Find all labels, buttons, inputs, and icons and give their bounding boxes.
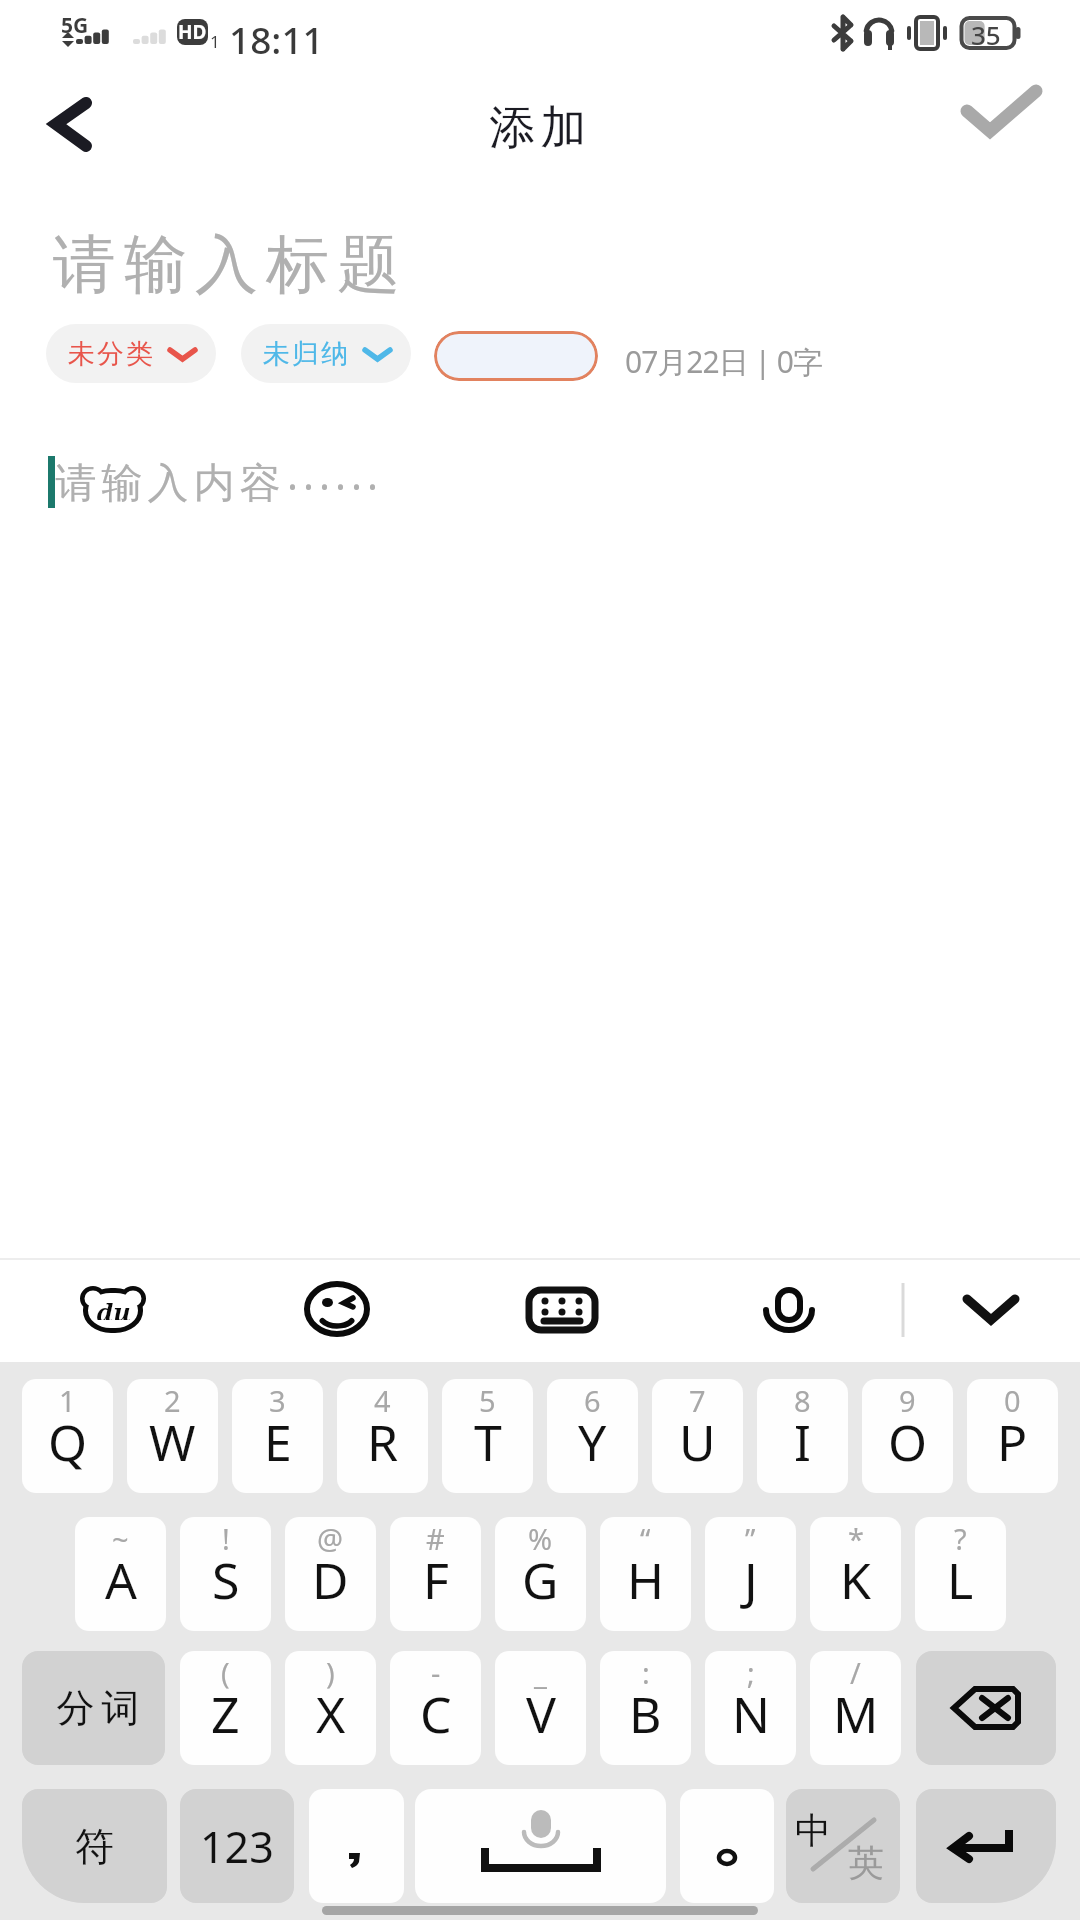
button[interactable]: Reminder bbox=[434, 331, 598, 381]
staticText: P bbox=[997, 1408, 1028, 1476]
staticText: 请输入标题 bbox=[49, 225, 404, 304]
button[interactable]: Enter bbox=[916, 1789, 1056, 1903]
button[interactable]: “ bbox=[600, 1517, 691, 1631]
button[interactable]: : bbox=[600, 1651, 691, 1765]
button[interactable]: ( bbox=[180, 1651, 271, 1765]
staticText: J bbox=[744, 1546, 758, 1614]
staticText: _ bbox=[534, 1653, 547, 1692]
button[interactable]: _ bbox=[495, 1651, 586, 1765]
staticText: % bbox=[528, 1519, 553, 1558]
staticText: H bbox=[627, 1546, 665, 1614]
staticText: D bbox=[312, 1546, 349, 1614]
button[interactable]: 6 bbox=[547, 1379, 638, 1493]
staticText: L bbox=[947, 1546, 974, 1614]
staticText: W bbox=[149, 1408, 196, 1476]
staticText: ······ bbox=[287, 458, 383, 514]
button[interactable]: 4 bbox=[337, 1379, 428, 1493]
staticText: 请输入内容 bbox=[53, 458, 283, 510]
button[interactable]: Hide keyboard bbox=[944, 1266, 1038, 1354]
button[interactable]: Done bbox=[950, 72, 1080, 188]
staticText: 4 bbox=[374, 1381, 391, 1420]
button[interactable]: 分词 bbox=[22, 1651, 165, 1765]
staticText: “ bbox=[640, 1519, 651, 1558]
button[interactable]: Backspace bbox=[916, 1651, 1056, 1765]
button[interactable]: ) bbox=[285, 1651, 376, 1765]
staticText: 符 bbox=[75, 1822, 114, 1871]
button[interactable]: Voice input bbox=[742, 1266, 836, 1354]
button[interactable]: Space bbox=[415, 1789, 666, 1903]
button[interactable]: Comma bbox=[309, 1789, 404, 1903]
staticText: V bbox=[526, 1680, 556, 1748]
staticText: ) bbox=[326, 1653, 335, 1692]
button[interactable]: Baidu input method bbox=[66, 1266, 160, 1354]
button[interactable]: Language toggle bbox=[786, 1789, 900, 1903]
staticText: # bbox=[426, 1519, 445, 1558]
staticText: Z bbox=[211, 1680, 240, 1748]
staticText: ” bbox=[745, 1519, 756, 1558]
button[interactable]: 未归纳 bbox=[241, 324, 411, 383]
staticText: 35 bbox=[971, 17, 1001, 52]
button[interactable]: 1 bbox=[22, 1379, 113, 1493]
staticText: G bbox=[522, 1546, 559, 1614]
staticText: 2 bbox=[164, 1381, 181, 1420]
button[interactable]: / bbox=[810, 1651, 901, 1765]
staticText: 8 bbox=[794, 1381, 811, 1420]
button[interactable]: 2 bbox=[127, 1379, 218, 1493]
staticText: X bbox=[316, 1680, 346, 1748]
staticText: ~ bbox=[112, 1519, 129, 1558]
staticText: M bbox=[833, 1680, 879, 1748]
staticText: A bbox=[105, 1546, 137, 1614]
button[interactable]: 符 bbox=[22, 1789, 167, 1903]
button[interactable]: * bbox=[810, 1517, 901, 1631]
staticText: du bbox=[96, 1294, 131, 1320]
staticText: 0 bbox=[1004, 1381, 1021, 1420]
staticText: B bbox=[629, 1680, 662, 1748]
button[interactable]: % bbox=[495, 1517, 586, 1631]
button[interactable]: @ bbox=[285, 1517, 376, 1631]
staticText: I bbox=[794, 1408, 811, 1476]
button[interactable]: ? bbox=[915, 1517, 1006, 1631]
staticText: 7 bbox=[689, 1381, 706, 1420]
button[interactable]: 9 bbox=[862, 1379, 953, 1493]
staticText: ; bbox=[747, 1653, 755, 1692]
staticText: @ bbox=[317, 1519, 344, 1558]
button[interactable]: 0 bbox=[967, 1379, 1058, 1493]
staticText: HD bbox=[178, 19, 207, 45]
button[interactable]: Period bbox=[680, 1789, 774, 1903]
button[interactable]: 未分类 bbox=[46, 324, 216, 383]
button[interactable]: 5 bbox=[442, 1379, 533, 1493]
button[interactable]: Back bbox=[0, 72, 120, 188]
staticText: S bbox=[212, 1546, 240, 1614]
button[interactable]: 123 bbox=[180, 1789, 294, 1903]
button[interactable]: 8 bbox=[757, 1379, 848, 1493]
staticText: Q bbox=[48, 1408, 88, 1476]
staticText: / bbox=[850, 1653, 861, 1692]
staticText: N bbox=[732, 1680, 770, 1748]
button[interactable]: 3 bbox=[232, 1379, 323, 1493]
button[interactable]: # bbox=[390, 1517, 481, 1631]
staticText: 未分类 bbox=[67, 337, 154, 371]
staticText: U bbox=[679, 1408, 716, 1476]
staticText: : bbox=[642, 1653, 650, 1692]
staticText: F bbox=[423, 1546, 449, 1614]
button[interactable]: ~ bbox=[75, 1517, 166, 1631]
staticText: - bbox=[431, 1653, 441, 1692]
staticText: 9 bbox=[899, 1381, 916, 1420]
staticText: 07月22日 | 0字 bbox=[625, 341, 822, 382]
staticText: T bbox=[474, 1408, 502, 1476]
staticText: 6 bbox=[584, 1381, 601, 1420]
button[interactable]: Keyboard layout bbox=[515, 1266, 609, 1354]
staticText: 5G bbox=[61, 11, 89, 40]
button[interactable]: Emoji bbox=[290, 1266, 384, 1354]
staticText: 18:11 bbox=[229, 14, 324, 64]
button[interactable]: ! bbox=[180, 1517, 271, 1631]
staticText: E bbox=[264, 1408, 292, 1476]
button[interactable]: ” bbox=[705, 1517, 796, 1631]
button[interactable]: ; bbox=[705, 1651, 796, 1765]
staticText: ? bbox=[954, 1519, 967, 1558]
staticText: ! bbox=[222, 1519, 230, 1558]
staticText: C bbox=[420, 1680, 452, 1748]
button[interactable]: - bbox=[390, 1651, 481, 1765]
button[interactable]: 7 bbox=[652, 1379, 743, 1493]
staticText: ( bbox=[221, 1653, 230, 1692]
